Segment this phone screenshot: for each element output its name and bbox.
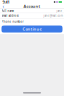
button[interactable]: Continue xyxy=(1,25,62,32)
staticText: Phone number xyxy=(1,20,23,23)
staticText: Account xyxy=(23,4,40,9)
button[interactable]: Back xyxy=(1,4,5,8)
staticText: jane@mail.com xyxy=(43,14,62,17)
staticText: Jane xyxy=(56,9,62,13)
button[interactable]: Full name xyxy=(0,9,64,13)
staticText: ‹ xyxy=(2,3,4,10)
staticText: 9:41 xyxy=(2,0,9,5)
button[interactable]: Phone number xyxy=(0,18,64,25)
staticText: Full name xyxy=(1,9,14,13)
staticText: Email address xyxy=(1,14,18,17)
staticText: Continue xyxy=(22,26,41,32)
button[interactable]: Email address xyxy=(0,13,64,18)
